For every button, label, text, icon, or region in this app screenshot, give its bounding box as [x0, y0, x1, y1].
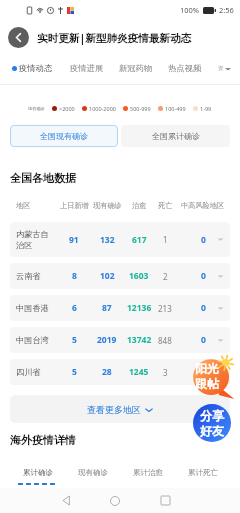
button[interactable]: 查看更多地区	[10, 395, 230, 423]
button[interactable]: 疫情进展	[70, 63, 104, 73]
staticText: 87	[102, 302, 112, 314]
staticText: 91	[69, 234, 79, 246]
staticText: 现有确诊	[93, 201, 122, 210]
staticText: 云南省	[16, 271, 50, 281]
staticText: 0	[201, 270, 206, 282]
button[interactable]: 全国现有确诊	[10, 125, 118, 147]
button[interactable]: 热点视频	[168, 63, 202, 73]
button[interactable]: Home	[100, 488, 130, 513]
staticText: 213	[158, 303, 172, 314]
staticText: 13742	[127, 334, 152, 346]
staticText: 全国累计确诊	[152, 131, 200, 141]
staticText: 累计确诊	[23, 468, 53, 477]
staticText: 死亡	[158, 201, 173, 210]
staticText: 累计死亡	[188, 468, 218, 477]
staticText: 中国台湾	[16, 335, 50, 345]
button[interactable]: Recents	[150, 488, 180, 513]
staticText: 1245	[129, 366, 149, 378]
staticText: 100-499	[165, 105, 186, 112]
staticText: 1-99	[200, 105, 212, 112]
staticText: 5	[72, 366, 77, 378]
button[interactable]: More tabs	[218, 65, 231, 72]
button[interactable]: Back	[51, 488, 81, 513]
staticText: 累计治愈	[133, 468, 163, 477]
staticText: 分享	[200, 408, 224, 423]
button[interactable]: 四川省	[10, 359, 230, 385]
staticText: 12136	[127, 302, 152, 314]
staticText: 地区	[16, 201, 31, 210]
staticText: 资	[218, 65, 224, 72]
staticText: 治愈	[132, 201, 147, 210]
staticText: >2000	[59, 105, 75, 112]
staticText: 848	[158, 335, 172, 346]
staticText: 阳光	[195, 361, 219, 376]
staticText: 实时更新|新型肺炎疫情最新动态	[37, 31, 192, 45]
button[interactable]: 累计死亡	[175, 461, 230, 488]
button[interactable]: 阳光跟帖	[189, 355, 235, 401]
button[interactable]: 云南省	[10, 263, 230, 289]
staticText: 1000-2000	[89, 105, 116, 112]
staticText: 500-999	[130, 105, 151, 112]
staticText: 1	[163, 234, 168, 245]
button[interactable]: 全国累计确诊	[121, 125, 230, 147]
staticText: 全国现有确诊	[40, 131, 88, 141]
staticText: 中国香港	[16, 303, 50, 313]
staticText: 102	[100, 270, 115, 282]
staticText: 上日新增	[60, 201, 89, 210]
staticText: 0	[201, 234, 206, 246]
button[interactable]: 疫情动态	[12, 63, 53, 73]
staticText: 617	[132, 234, 147, 246]
staticText: 6	[72, 302, 77, 314]
staticText: 好友	[200, 423, 224, 438]
button[interactable]: 内蒙古自治区	[10, 222, 230, 257]
staticText: 现有确诊	[28, 106, 45, 111]
staticText: 查看更多地区	[87, 404, 141, 415]
staticText: 2019	[97, 334, 117, 346]
staticText: 28	[102, 366, 112, 378]
staticText: 0	[201, 334, 206, 346]
staticText: 现有确诊	[78, 468, 108, 477]
staticText: 100%	[180, 5, 200, 15]
button[interactable]: 累计确诊	[10, 461, 65, 488]
staticText: 疫情动态	[19, 63, 53, 73]
staticText: 全国各地数据	[10, 171, 76, 185]
button[interactable]: 累计治愈	[120, 461, 175, 488]
button[interactable]: 中国台湾	[10, 327, 230, 353]
staticText: 5	[72, 334, 77, 346]
staticText: 四川省	[16, 367, 50, 377]
staticText: 跟帖	[195, 376, 219, 391]
staticText: 海外疫情详情	[10, 433, 76, 447]
staticText: 0	[201, 302, 206, 314]
staticText: 2	[163, 271, 168, 282]
staticText: 内蒙古自治区	[16, 229, 50, 251]
staticText: 1603	[129, 270, 149, 282]
staticText: 2:56	[219, 5, 234, 15]
button[interactable]: 分享好友	[193, 404, 231, 442]
staticText: 132	[100, 234, 115, 246]
staticText: 0	[201, 366, 206, 378]
button[interactable]: 中国香港	[10, 295, 230, 321]
button[interactable]: 新冠药物	[119, 63, 153, 73]
staticText: 3	[163, 367, 168, 378]
staticText: 中高风险地区	[181, 201, 225, 210]
button[interactable]: 现有确诊	[65, 461, 120, 488]
button[interactable]: Back	[8, 27, 29, 48]
staticText: 8	[72, 270, 77, 282]
